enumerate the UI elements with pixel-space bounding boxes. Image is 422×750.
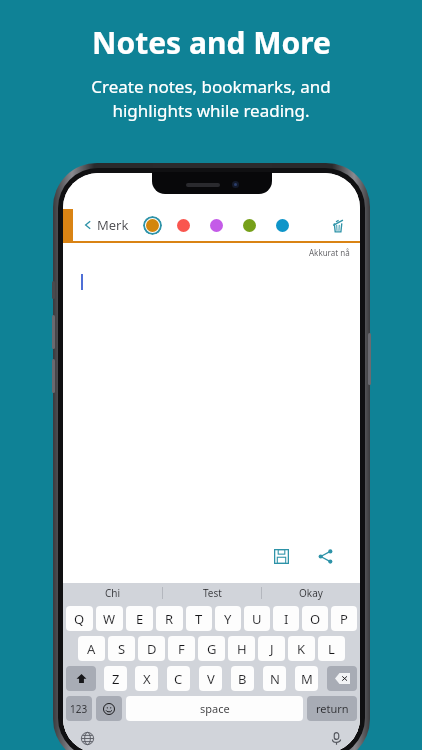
button[interactable]: D	[138, 636, 165, 661]
button[interactable]: Shift	[66, 666, 96, 691]
button[interactable]: Delete note	[324, 211, 352, 239]
staticText: Chi	[105, 586, 121, 600]
button[interactable]: G	[198, 636, 225, 661]
button[interactable]: O	[302, 606, 328, 631]
button[interactable]: Y	[215, 606, 241, 631]
staticText: space	[200, 701, 230, 716]
staticText: Y	[224, 610, 232, 628]
button[interactable]: T	[186, 606, 212, 631]
button[interactable]: Highlight colour 3	[205, 214, 227, 236]
button[interactable]: Voice input	[326, 728, 346, 748]
staticText: D	[147, 640, 157, 658]
button[interactable]: M	[295, 666, 318, 691]
button[interactable]: Chi	[63, 583, 162, 603]
staticText: E	[136, 610, 144, 628]
button[interactable]: S	[108, 636, 135, 661]
staticText: Notes and More	[92, 22, 331, 63]
staticText: U	[252, 610, 262, 628]
staticText: K	[297, 640, 306, 658]
button[interactable]: space	[126, 696, 303, 721]
button[interactable]: 123	[66, 696, 92, 721]
staticText: Z	[112, 670, 120, 688]
button[interactable]: C	[167, 666, 190, 691]
button[interactable]: P	[331, 606, 357, 631]
button[interactable]: Highlight colour 5	[271, 214, 293, 236]
staticText: Test	[203, 586, 222, 600]
button[interactable]: I	[273, 606, 299, 631]
staticText: W	[103, 610, 116, 628]
button[interactable]: R	[156, 606, 183, 631]
button[interactable]: W	[96, 606, 123, 631]
staticText: J	[270, 640, 274, 658]
button[interactable]: K	[288, 636, 315, 661]
button[interactable]: Backspace	[327, 666, 357, 691]
staticText: F	[178, 640, 185, 658]
staticText: O	[310, 610, 321, 628]
staticText: G	[207, 640, 217, 658]
staticText: 123	[70, 702, 88, 716]
button[interactable]: L	[318, 636, 345, 661]
staticText: return	[316, 701, 349, 716]
staticText: P	[340, 610, 348, 628]
button[interactable]: Z	[104, 666, 127, 691]
button[interactable]: Change keyboard language	[77, 728, 97, 748]
staticText: Merk	[97, 216, 129, 234]
staticText: M	[301, 670, 313, 688]
button[interactable]: B	[231, 666, 254, 691]
staticText: Q	[74, 610, 85, 628]
staticText: X	[143, 670, 151, 688]
button[interactable]: N	[263, 666, 286, 691]
button[interactable]: E	[126, 606, 153, 631]
staticText: H	[237, 640, 247, 658]
staticText: R	[165, 610, 174, 628]
button[interactable]: Emoji keyboard	[96, 696, 122, 721]
staticText: L	[328, 640, 335, 658]
button[interactable]: Merk	[81, 212, 131, 238]
staticText: C	[174, 670, 183, 688]
staticText: I	[284, 610, 289, 628]
button[interactable]: Okay	[262, 583, 360, 603]
staticText: T	[195, 610, 203, 628]
staticText: B	[238, 670, 247, 688]
button[interactable]: Q	[66, 606, 93, 631]
button[interactable]: F	[168, 636, 195, 661]
button[interactable]: U	[244, 606, 270, 631]
button[interactable]: Highlight colour 4	[238, 214, 260, 236]
button[interactable]: H	[228, 636, 255, 661]
button[interactable]: Highlight colour 1	[141, 214, 163, 236]
button[interactable]: Save note	[268, 543, 294, 569]
button[interactable]: Test	[163, 583, 261, 603]
button[interactable]: Share note	[312, 543, 338, 569]
staticText: A	[87, 640, 96, 658]
button[interactable]: V	[199, 666, 222, 691]
button[interactable]: return	[307, 696, 357, 721]
button[interactable]: A	[78, 636, 105, 661]
staticText: Create notes, bookmarks, and highlights …	[91, 75, 331, 122]
staticText: S	[118, 640, 126, 658]
staticText: Okay	[299, 586, 323, 600]
button[interactable]: X	[135, 666, 158, 691]
staticText: V	[207, 670, 215, 688]
staticText: N	[270, 670, 280, 688]
button[interactable]: Highlight colour 2	[172, 214, 194, 236]
staticText: Akkurat nå	[309, 247, 350, 258]
button[interactable]: J	[258, 636, 285, 661]
